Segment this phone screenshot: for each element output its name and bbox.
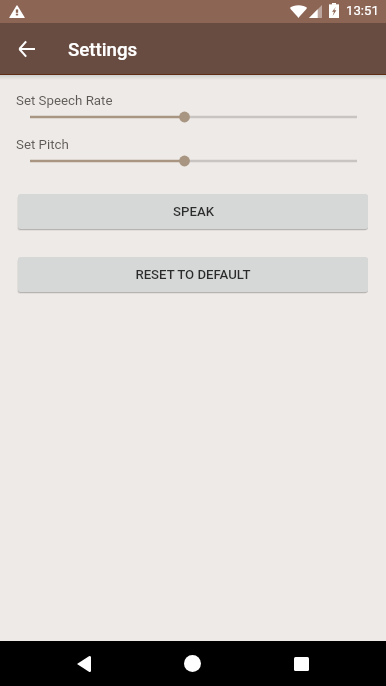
staticText: SPEAK [173, 204, 214, 219]
button[interactable]: SPEAK [18, 194, 368, 229]
staticText: Set Speech Rate [16, 93, 113, 109]
button[interactable]: Home [170, 641, 215, 686]
staticText: Set Pitch [16, 137, 69, 153]
button[interactable]: Back [61, 641, 106, 686]
staticText: Settings [68, 39, 138, 61]
button[interactable]: Navigate up [4, 27, 48, 71]
button[interactable]: RESET TO DEFAULT [18, 257, 368, 292]
button[interactable]: Set Speech Rate [0, 107, 386, 127]
button[interactable]: Set Pitch [0, 151, 386, 171]
staticText: RESET TO DEFAULT [135, 267, 251, 282]
button[interactable]: Recent apps [279, 641, 324, 686]
staticText: 13:51 [346, 3, 379, 18]
